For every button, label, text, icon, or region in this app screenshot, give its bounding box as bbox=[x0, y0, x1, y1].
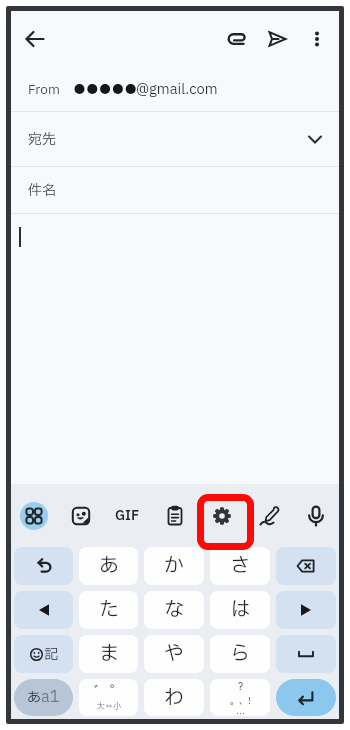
staticText: 。、! bbox=[230, 694, 251, 707]
button[interactable]: あ bbox=[14, 679, 73, 716]
button[interactable]: 記 bbox=[14, 635, 73, 673]
button[interactable] bbox=[14, 591, 73, 629]
button[interactable]: た bbox=[79, 591, 138, 629]
staticText: ? bbox=[238, 679, 243, 694]
button[interactable]: ゛ ゜ bbox=[79, 679, 138, 716]
button[interactable] bbox=[276, 679, 336, 716]
staticText: From bbox=[28, 80, 60, 99]
staticText: あ bbox=[27, 687, 41, 708]
staticText: @gmail.com bbox=[136, 79, 218, 100]
button[interactable] bbox=[292, 484, 339, 544]
staticText: ゛ ゜ bbox=[94, 682, 124, 701]
staticText: GIF bbox=[115, 506, 140, 526]
staticText: か bbox=[164, 551, 184, 581]
staticText: 記 bbox=[44, 644, 58, 665]
staticText: あ bbox=[99, 551, 119, 581]
button[interactable]: ? bbox=[210, 679, 270, 716]
button[interactable] bbox=[305, 27, 329, 51]
button[interactable] bbox=[245, 484, 292, 544]
button[interactable] bbox=[276, 547, 336, 585]
button[interactable]: ら bbox=[210, 635, 270, 673]
staticText: 件名 bbox=[28, 180, 56, 201]
staticText: は bbox=[230, 595, 250, 625]
button[interactable]: 宛先 bbox=[11, 112, 339, 166]
staticText: … bbox=[236, 707, 246, 716]
staticText: 大⇔小 bbox=[97, 701, 121, 713]
button[interactable]: な bbox=[144, 591, 204, 629]
button[interactable]: わ bbox=[144, 679, 204, 716]
staticText: わ bbox=[164, 683, 184, 713]
button[interactable] bbox=[265, 27, 289, 51]
staticText: や bbox=[164, 639, 184, 669]
button[interactable]: 件名 bbox=[11, 167, 339, 213]
button[interactable]: GIF bbox=[104, 484, 151, 544]
staticText: さ bbox=[230, 551, 250, 581]
button[interactable] bbox=[151, 484, 198, 544]
staticText: ま bbox=[99, 639, 119, 669]
button[interactable] bbox=[198, 484, 245, 544]
button[interactable] bbox=[23, 27, 47, 51]
button[interactable]: や bbox=[144, 635, 204, 673]
button[interactable]: あ bbox=[79, 547, 138, 585]
button[interactable] bbox=[11, 484, 57, 544]
button[interactable] bbox=[276, 635, 336, 673]
button[interactable]: か bbox=[144, 547, 204, 585]
button[interactable] bbox=[276, 591, 336, 629]
button[interactable] bbox=[14, 547, 73, 585]
button[interactable] bbox=[225, 27, 249, 51]
button[interactable]: From bbox=[11, 67, 339, 111]
staticText: 宛先 bbox=[28, 129, 56, 150]
button[interactable] bbox=[57, 484, 104, 544]
staticText: ら bbox=[230, 639, 250, 669]
button[interactable]: ま bbox=[79, 635, 138, 673]
button[interactable]: さ bbox=[210, 547, 270, 585]
button[interactable]: は bbox=[210, 591, 270, 629]
staticText: a1 bbox=[41, 686, 60, 709]
staticText: な bbox=[164, 595, 184, 625]
staticText: た bbox=[99, 595, 119, 625]
